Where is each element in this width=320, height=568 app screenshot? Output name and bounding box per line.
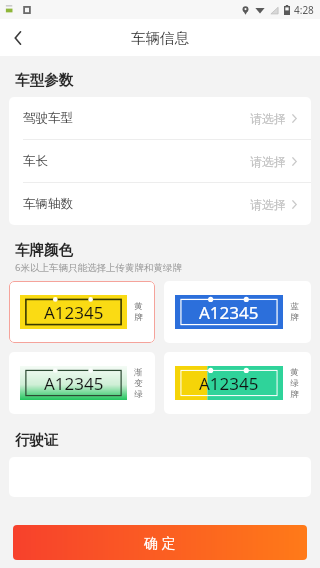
button[interactable]: 车辆轴数 (9, 183, 311, 225)
staticText: 车型参数 (15, 71, 73, 89)
staticText: 请选择 (250, 111, 286, 126)
button[interactable]: A12345 (9, 281, 155, 343)
staticText: A12345 (44, 372, 104, 395)
staticText: 黄 (290, 367, 299, 378)
staticText: 驾驶车型 (23, 110, 73, 126)
button[interactable]: A12345 (164, 281, 311, 343)
staticText: 绿 (134, 389, 143, 400)
staticText: 确 定 (144, 533, 176, 552)
staticText: A12345 (199, 372, 259, 395)
staticText: 牌 (290, 389, 299, 400)
button[interactable]: 驾驶车型 (9, 97, 311, 140)
staticText: 请选择 (250, 197, 286, 212)
staticText: 车牌颜色 (15, 241, 73, 259)
staticText: 变 (134, 378, 143, 389)
staticText: A12345 (199, 301, 259, 324)
staticText: 牌 (290, 312, 299, 323)
button[interactable]: A12345 (9, 352, 155, 414)
staticText: 行驶证 (15, 431, 59, 449)
staticText: 请选择 (250, 154, 286, 169)
staticText: 车长 (23, 153, 48, 169)
button[interactable]: 确 定 (13, 525, 307, 560)
staticText: 黄 (134, 301, 143, 312)
staticText: 牌 (134, 312, 143, 323)
button[interactable]: A12345 (164, 352, 311, 414)
staticText: 渐 (134, 367, 143, 378)
staticText: A12345 (44, 301, 104, 324)
staticText: 蓝 (290, 301, 299, 312)
staticText: 6米以上车辆只能选择上传黄牌和黄绿牌 (15, 261, 182, 274)
button[interactable]: Back (0, 20, 36, 56)
staticText: 车辆信息 (131, 29, 189, 47)
staticText: 4:28 (294, 3, 314, 17)
button[interactable]: 车长 (9, 140, 311, 183)
staticText: 绿 (290, 378, 299, 389)
staticText: 车辆轴数 (23, 196, 73, 212)
